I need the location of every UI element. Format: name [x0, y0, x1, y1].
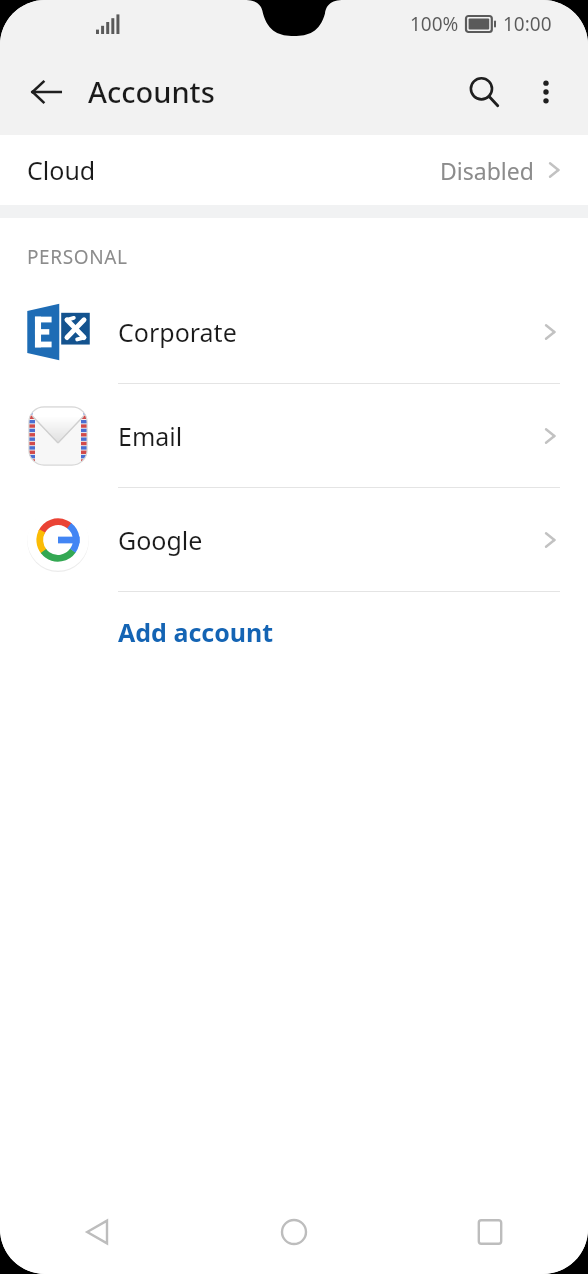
button[interactable]: Google: [0, 488, 588, 592]
button[interactable]: Corporate: [0, 280, 588, 384]
staticText: 100%: [410, 11, 459, 37]
staticText: Accounts: [88, 72, 215, 111]
button[interactable]: Recent apps: [392, 1190, 588, 1274]
staticText: Corporate: [118, 315, 237, 349]
staticText: 10:00: [503, 11, 552, 37]
button[interactable]: Back: [14, 60, 78, 124]
button[interactable]: Cloud: [0, 135, 588, 205]
staticText: Add account: [118, 615, 274, 649]
button[interactable]: Add account: [0, 592, 588, 672]
staticText: Email: [118, 419, 183, 453]
button[interactable]: Search: [452, 60, 516, 124]
button[interactable]: Email: [0, 384, 588, 488]
staticText: Cloud: [27, 153, 96, 187]
staticText: PERSONAL: [27, 244, 128, 270]
button[interactable]: Home: [196, 1190, 392, 1274]
staticText: Disabled: [440, 155, 534, 186]
button[interactable]: Back: [0, 1190, 196, 1274]
button[interactable]: More options: [516, 62, 576, 122]
staticText: Google: [118, 523, 203, 557]
